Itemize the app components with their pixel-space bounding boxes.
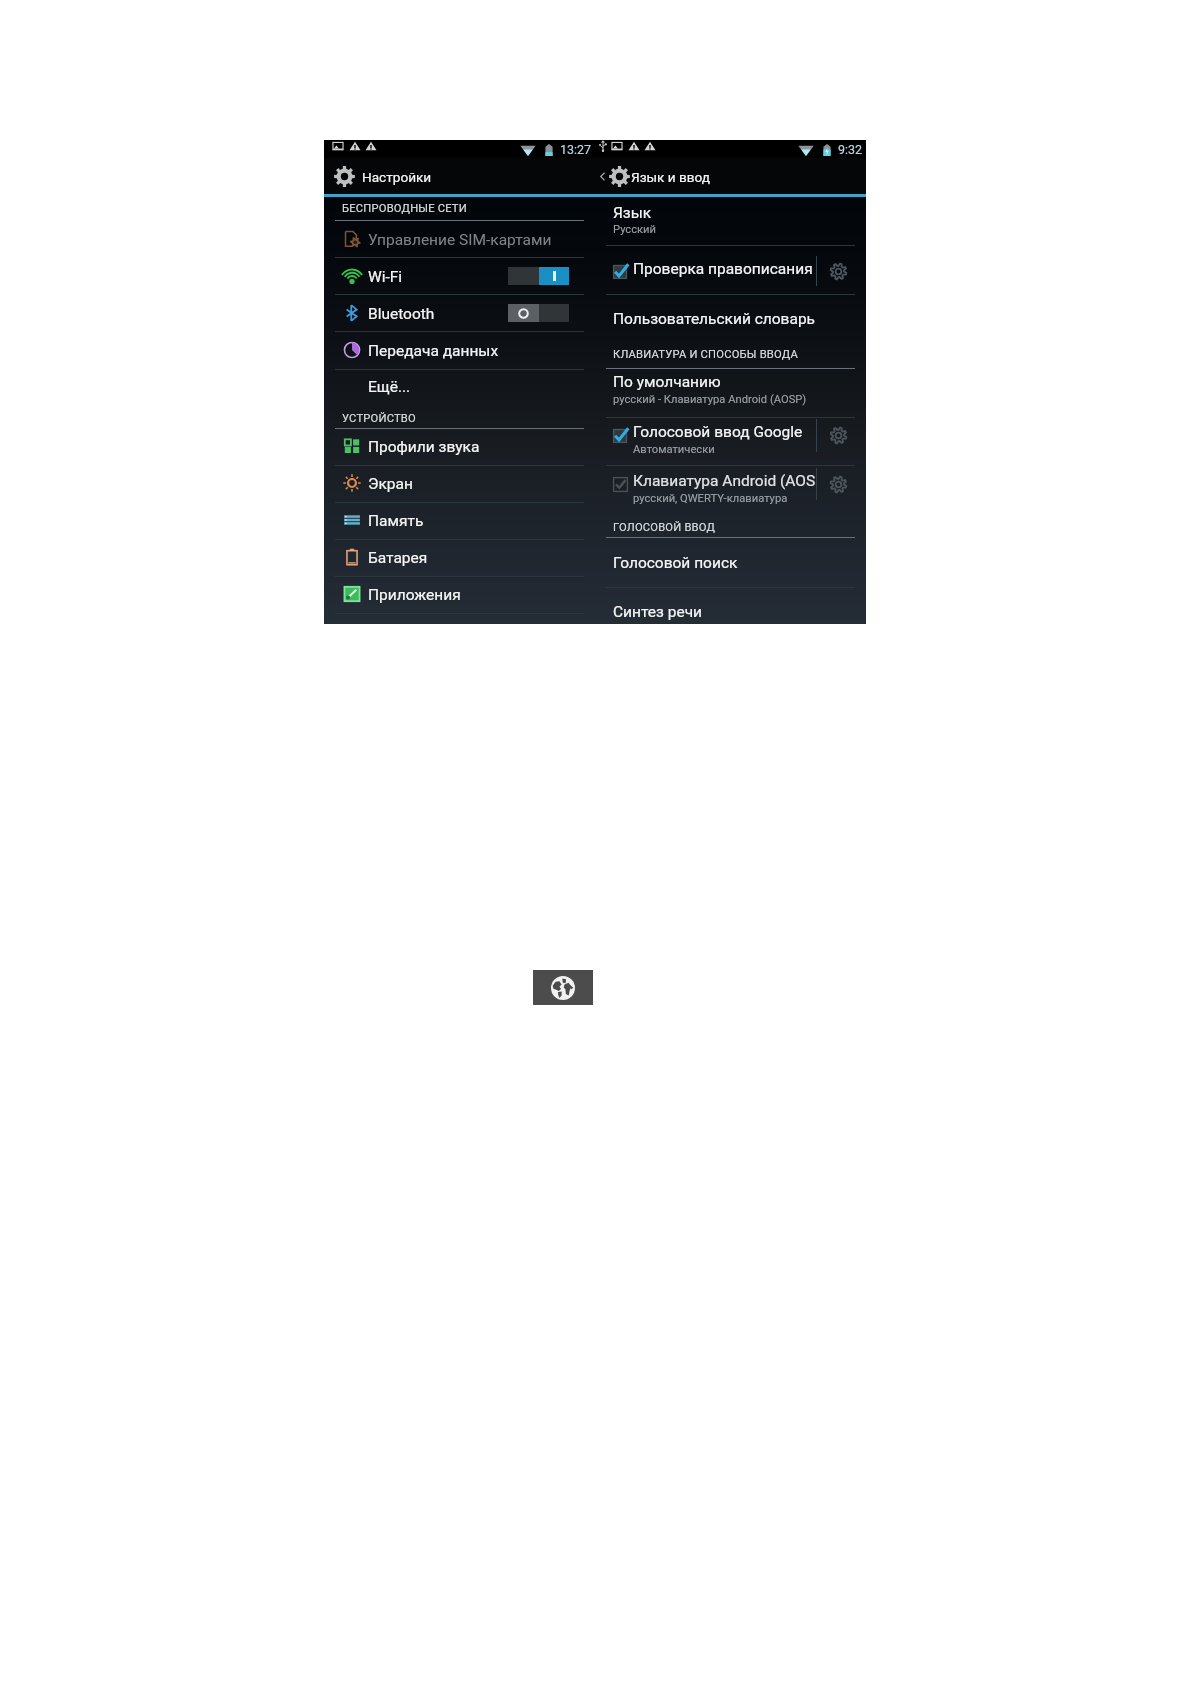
staticText: русский - Клавиатура Android (AOSP) xyxy=(613,393,807,406)
button[interactable]: Ещё... xyxy=(324,369,595,405)
staticText: Язык xyxy=(613,204,652,222)
staticText: Приложения xyxy=(368,586,461,604)
button[interactable]: Профили звука xyxy=(324,428,595,464)
staticText: 13:27 xyxy=(560,142,592,157)
staticText: КЛАВИАТУРА И СПОСОБЫ ВВОДА xyxy=(613,348,798,361)
button[interactable] xyxy=(595,465,816,503)
button[interactable]: Browser xyxy=(533,970,593,1005)
button[interactable]: Wi-Fi xyxy=(324,258,595,294)
staticText: Батарея xyxy=(368,549,428,567)
staticText: Ещё... xyxy=(368,378,411,396)
staticText: Синтез речи xyxy=(613,603,703,621)
staticText: Экран xyxy=(368,475,413,493)
button[interactable]: Settings xyxy=(817,465,866,503)
staticText: Клавиатура Android (AOS xyxy=(633,472,816,490)
button[interactable]: Управление SIM-картами xyxy=(324,221,595,257)
staticText: русский, QWERTY-клавиатура xyxy=(633,492,788,505)
button[interactable]: Голосовой поиск xyxy=(595,540,866,586)
button[interactable]: Приложения xyxy=(324,576,595,612)
button[interactable]: Память xyxy=(324,502,595,538)
button[interactable]: Синтез речи xyxy=(595,600,866,624)
staticText: Голосовой поиск xyxy=(613,554,738,572)
staticText: УСТРОЙСТВО xyxy=(342,412,416,425)
button[interactable]: Настройки xyxy=(324,158,595,194)
staticText: По умолчанию xyxy=(613,373,721,391)
button[interactable]: Settings xyxy=(817,416,866,455)
staticText: Wi-Fi xyxy=(368,268,403,286)
staticText: Пользовательский словарь xyxy=(613,310,816,328)
button[interactable]: Пользовательский словарь xyxy=(595,296,866,342)
staticText: Автоматически xyxy=(633,443,715,456)
staticText: Русский xyxy=(613,223,657,236)
staticText: Передача данных xyxy=(368,342,499,360)
staticText: Bluetooth xyxy=(368,305,435,323)
staticText: Профили звука xyxy=(368,438,480,456)
button[interactable] xyxy=(595,253,816,289)
staticText: Язык и ввод xyxy=(631,169,711,185)
button[interactable]: Toggle Wi-Fi xyxy=(508,267,569,285)
staticText: 9:32 xyxy=(838,142,863,157)
staticText: ГОЛОСОВОЙ ВВОД xyxy=(613,521,716,534)
staticText: Память xyxy=(368,512,424,530)
button[interactable]: Toggle Bluetooth xyxy=(508,304,569,322)
button[interactable]: Батарея xyxy=(324,539,595,575)
staticText: Настройки xyxy=(362,169,432,185)
button[interactable]: Settings xyxy=(817,253,866,289)
staticText: Проверка правописания xyxy=(633,260,813,278)
staticText: БЕСПРОВОДНЫЕ СЕТИ xyxy=(342,202,467,215)
staticText: Управление SIM-картами xyxy=(368,231,552,249)
button[interactable]: Язык xyxy=(595,197,866,240)
button[interactable]: Bluetooth xyxy=(324,295,595,331)
button[interactable]: Back xyxy=(595,158,866,194)
button[interactable]: Передача данных xyxy=(324,332,595,368)
button[interactable] xyxy=(595,416,816,455)
button[interactable]: По умолчанию xyxy=(595,366,866,410)
button[interactable]: Экран xyxy=(324,465,595,501)
button[interactable]: Back xyxy=(596,158,611,194)
staticText: Голосовой ввод Google xyxy=(633,423,803,441)
